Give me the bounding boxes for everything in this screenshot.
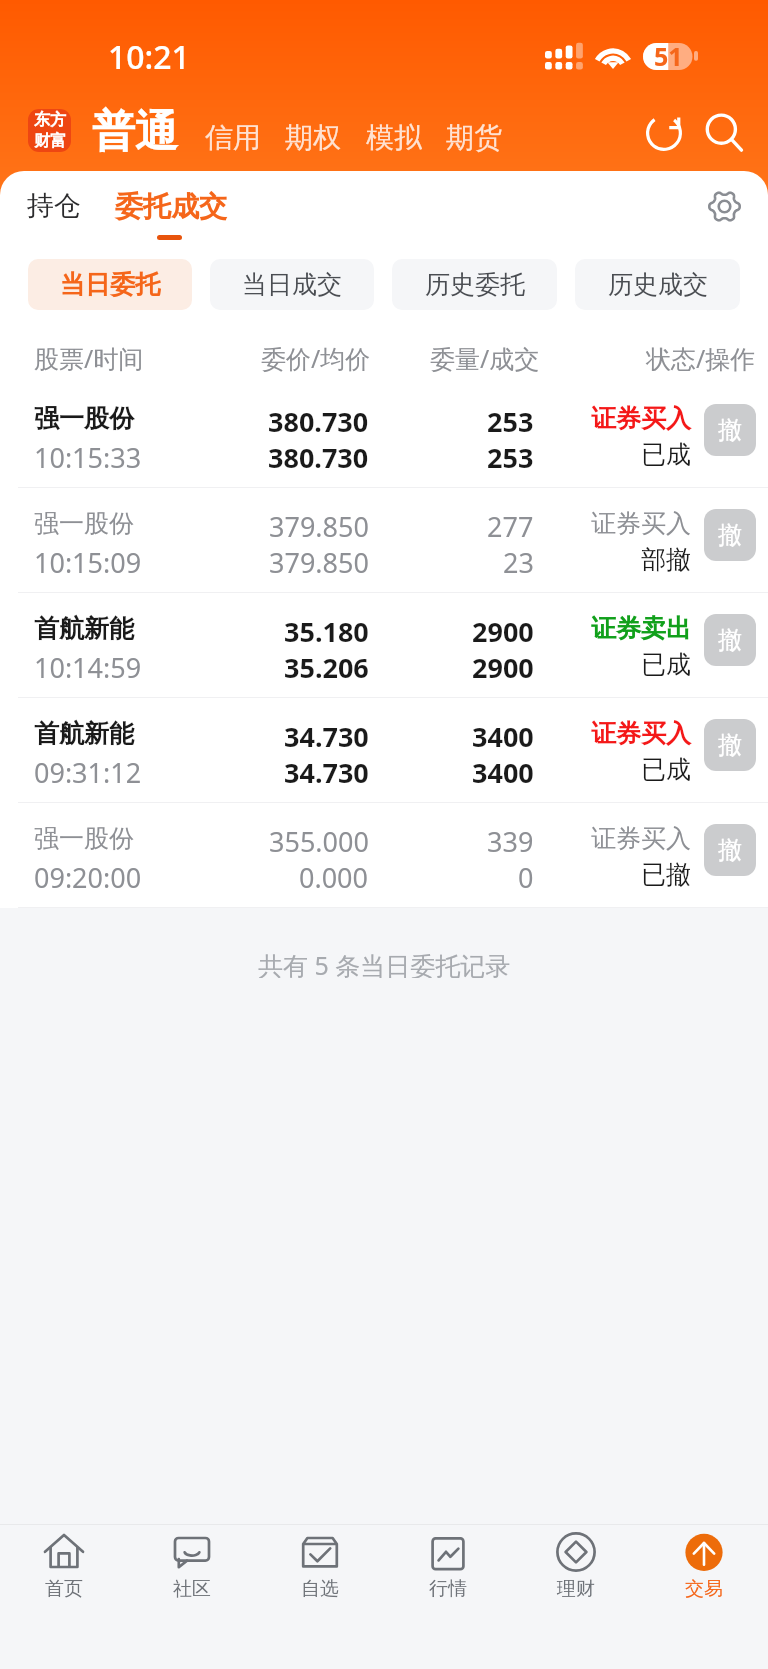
staticText: 379.850: [269, 508, 369, 545]
staticText: 强一股份: [34, 823, 134, 854]
staticText: 23: [503, 544, 534, 581]
button[interactable]: 首航新能: [0, 593, 768, 698]
staticText: 10:15:09: [34, 544, 142, 581]
staticText: 277: [487, 508, 534, 545]
staticText: 已成: [641, 754, 691, 785]
staticText: 撤: [718, 835, 742, 865]
staticText: 35.180: [284, 613, 369, 650]
button[interactable]: 东方财富: [28, 109, 71, 152]
button[interactable]: 信用: [205, 120, 261, 155]
staticText: 0: [518, 859, 534, 896]
staticText: 10:15:33: [34, 439, 142, 476]
button[interactable]: 撤单: [704, 719, 756, 771]
staticText: 部撤: [641, 544, 691, 575]
staticText: 253: [487, 403, 534, 440]
staticText: 状态/操作: [646, 341, 756, 375]
staticText: 51: [654, 39, 683, 73]
staticText: 09:31:12: [34, 754, 142, 791]
staticText: 自选: [301, 1577, 339, 1601]
staticText: 10:14:59: [34, 649, 142, 686]
staticText: 2900: [472, 649, 534, 686]
staticText: 379.850: [269, 544, 369, 581]
button[interactable]: Refresh: [638, 107, 690, 159]
button[interactable]: 持仓: [27, 189, 81, 223]
staticText: 委量/成交: [430, 341, 540, 375]
staticText: 东方: [34, 110, 66, 130]
staticText: 380.730: [268, 439, 369, 476]
staticText: 行情: [429, 1577, 467, 1601]
staticText: 已撤: [641, 859, 691, 890]
button[interactable]: 期权: [285, 120, 341, 155]
staticText: 证券买入: [591, 823, 691, 854]
staticText: 强一股份: [34, 403, 134, 434]
button[interactable]: 当日委托: [28, 259, 192, 310]
staticText: 2900: [472, 613, 534, 650]
staticText: 380.730: [268, 403, 369, 440]
button[interactable]: 撤单: [704, 824, 756, 876]
staticText: 已成: [641, 439, 691, 470]
staticText: 首航新能: [34, 718, 134, 749]
staticText: 0.000: [299, 859, 369, 896]
staticText: 社区: [173, 1577, 211, 1601]
staticText: 撤: [718, 520, 742, 550]
staticText: 当日成交: [242, 269, 342, 300]
staticText: 期货: [446, 120, 502, 155]
staticText: 历史委托: [425, 269, 525, 300]
button[interactable]: 撤单: [704, 404, 756, 456]
staticText: 共有 5 条当日委托记录: [258, 948, 511, 978]
staticText: 持仓: [27, 189, 81, 223]
button[interactable]: 当日成交: [210, 259, 374, 310]
staticText: 证券买入: [591, 508, 691, 539]
staticText: 首页: [45, 1577, 83, 1601]
staticText: 理财: [557, 1577, 595, 1601]
button[interactable]: 撤单: [704, 614, 756, 666]
staticText: 339: [487, 823, 534, 860]
other: Battery 51 percent: [643, 43, 698, 70]
other: Signal strength: [545, 42, 583, 70]
button[interactable]: Search: [698, 107, 750, 159]
button[interactable]: 历史成交: [575, 259, 740, 310]
staticText: 委托成交: [115, 189, 227, 224]
button[interactable]: 自选: [256, 1525, 384, 1669]
staticText: 撤: [718, 415, 742, 445]
staticText: 09:20:00: [34, 859, 142, 896]
staticText: 253: [487, 439, 534, 476]
staticText: 历史成交: [608, 269, 708, 300]
staticText: 35.206: [284, 649, 369, 686]
staticText: 证券买入: [591, 718, 691, 749]
staticText: 355.000: [269, 823, 369, 860]
button[interactable]: 强一股份: [0, 488, 768, 593]
button[interactable]: Settings: [698, 180, 750, 232]
staticText: 已成: [641, 649, 691, 680]
button[interactable]: 撤单: [704, 509, 756, 561]
button[interactable]: 首页: [0, 1525, 128, 1669]
button[interactable]: 交易: [640, 1525, 768, 1669]
button[interactable]: 委托成交: [115, 189, 227, 224]
button[interactable]: 强一股份: [0, 803, 768, 908]
button[interactable]: 行情: [384, 1525, 512, 1669]
staticText: 财富: [34, 131, 66, 151]
staticText: 强一股份: [34, 508, 134, 539]
staticText: 模拟: [366, 120, 422, 155]
staticText: 首航新能: [34, 613, 134, 644]
staticText: 撤: [718, 730, 742, 760]
staticText: 信用: [205, 120, 261, 155]
button[interactable]: 社区: [128, 1525, 256, 1669]
button[interactable]: 普通: [92, 105, 178, 159]
button[interactable]: 期货: [446, 120, 502, 155]
button[interactable]: 强一股份: [0, 383, 768, 488]
staticText: 3400: [472, 718, 534, 755]
button[interactable]: 历史委托: [392, 259, 557, 310]
staticText: 34.730: [284, 718, 369, 755]
staticText: 股票/时间: [34, 341, 144, 375]
staticText: 3400: [472, 754, 534, 791]
staticText: 委价/均价: [261, 341, 371, 375]
staticText: 普通: [92, 105, 178, 159]
staticText: 当日委托: [60, 269, 160, 300]
button[interactable]: 模拟: [366, 120, 422, 155]
button[interactable]: 首航新能: [0, 698, 768, 803]
staticText: 撤: [718, 625, 742, 655]
button[interactable]: 理财: [512, 1525, 640, 1669]
staticText: 证券买入: [591, 403, 691, 434]
other: Wi-Fi: [596, 42, 630, 69]
